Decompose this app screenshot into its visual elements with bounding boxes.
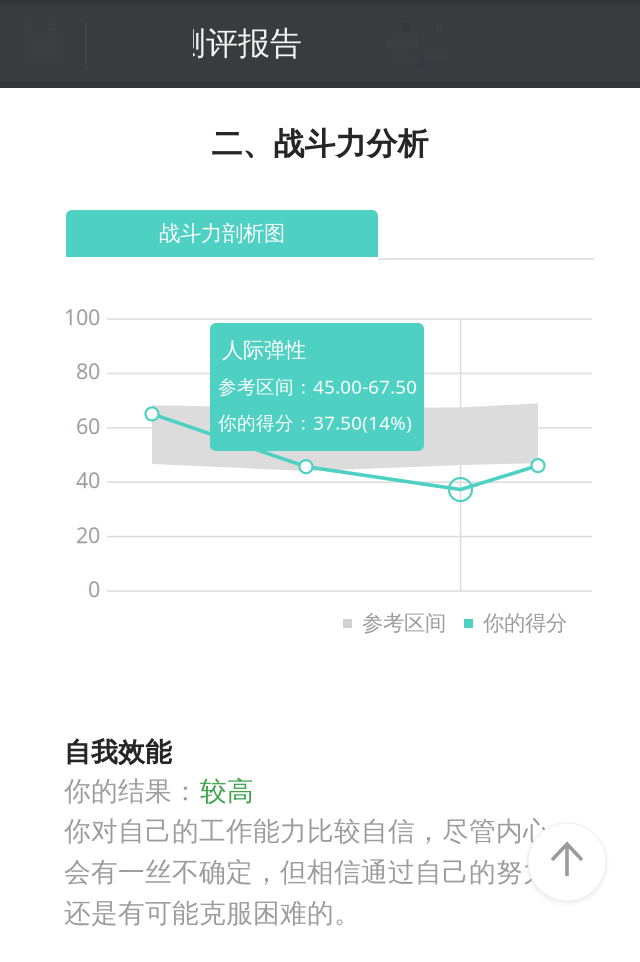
button[interactable]: Menu: [0, 0, 640, 88]
staticText: 你的得分: [483, 610, 567, 636]
staticText: 80: [76, 357, 100, 385]
staticText: 你的得分：37.50(14%): [218, 410, 412, 435]
staticText: 你的结果：: [64, 775, 199, 808]
staticText: 测评报告: [174, 24, 302, 63]
staticText: 自我效能: [64, 736, 172, 769]
staticText: 你对自己的工作能力比较自信，尽管内心: [64, 815, 550, 848]
staticText: 人际弹性: [222, 337, 306, 363]
staticText: 参考区间：45.00-67.50: [218, 374, 417, 399]
staticText: 参考区间: [362, 610, 446, 636]
staticText: 20: [76, 521, 100, 549]
staticText: 二、战斗力分析: [211, 125, 428, 163]
button[interactable]: 战斗力剖析图: [66, 210, 378, 257]
staticText: 40: [76, 466, 100, 494]
staticText: 60: [76, 412, 100, 440]
staticText: 100: [64, 303, 100, 331]
button[interactable]: Scroll to top: [523, 819, 611, 911]
staticText: 还是有可能克服困难的。: [64, 897, 361, 930]
staticText: 较高: [200, 775, 254, 808]
staticText: 战斗力剖析图: [159, 220, 285, 247]
staticText: 会有一丝不确定，但相信通过自己的努力: [64, 856, 550, 889]
staticText: 0: [88, 575, 100, 603]
